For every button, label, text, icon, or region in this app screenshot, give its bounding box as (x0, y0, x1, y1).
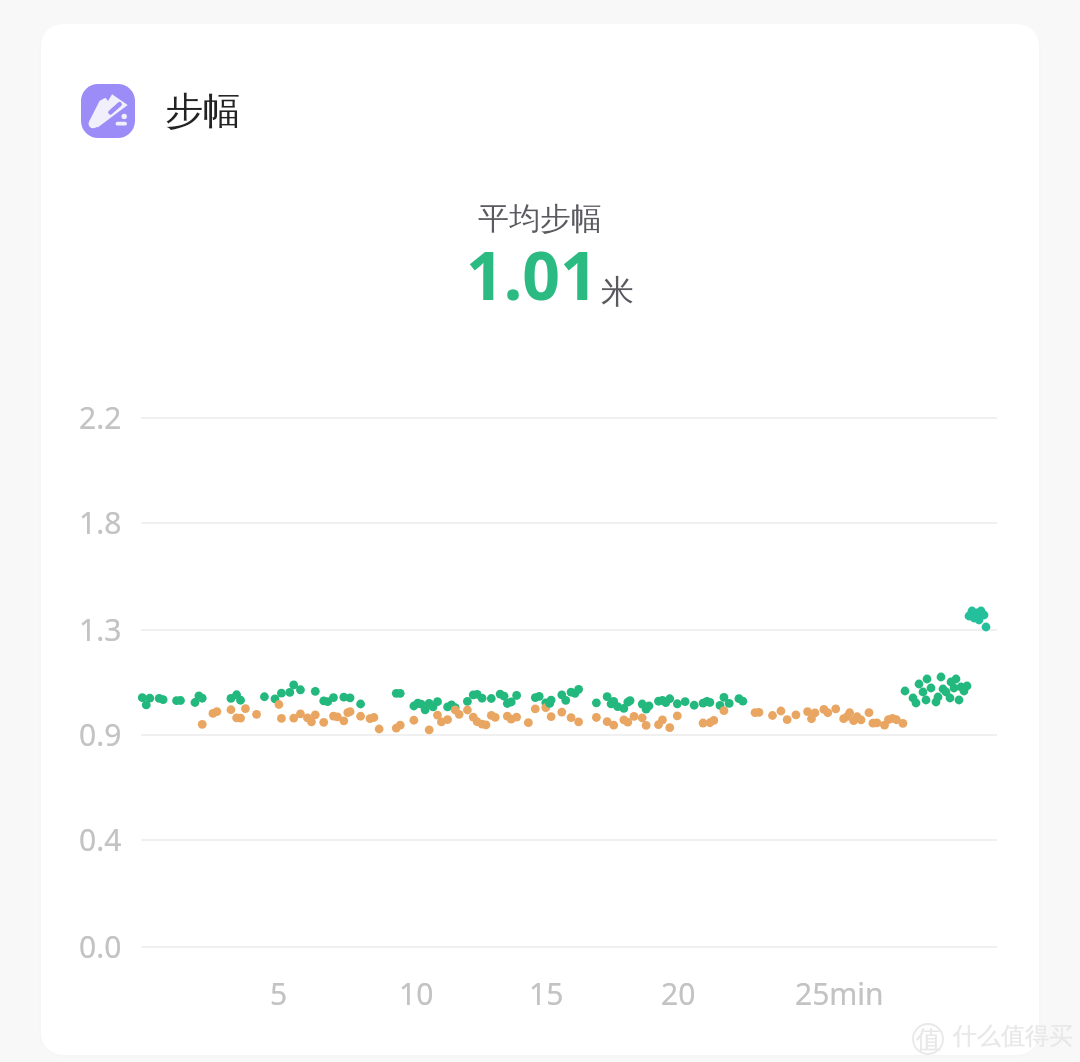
staticText: 什么值得买 (953, 1021, 1073, 1051)
staticText: 15 (529, 973, 564, 1014)
staticText: 5 (270, 973, 288, 1014)
staticText: 平均步幅 (478, 199, 602, 238)
other: Stride (81, 84, 135, 138)
staticText: 0.0 (79, 926, 122, 967)
staticText: 米 (601, 271, 634, 313)
staticText: 1.8 (79, 502, 122, 543)
staticText: 值 (916, 1024, 941, 1055)
staticText: 1.01 (466, 229, 598, 319)
button[interactable]: Stride (81, 84, 241, 138)
staticText: 步幅 (165, 87, 241, 135)
staticText: 0.9 (79, 714, 122, 755)
staticText: 2.2 (79, 397, 122, 438)
staticText: 25min (795, 973, 884, 1014)
staticText: 0.4 (79, 819, 122, 860)
button[interactable]: Stride (41, 24, 1039, 1055)
staticText: 10 (399, 973, 434, 1014)
staticText: 20 (661, 973, 696, 1014)
staticText: 1.3 (79, 609, 122, 650)
